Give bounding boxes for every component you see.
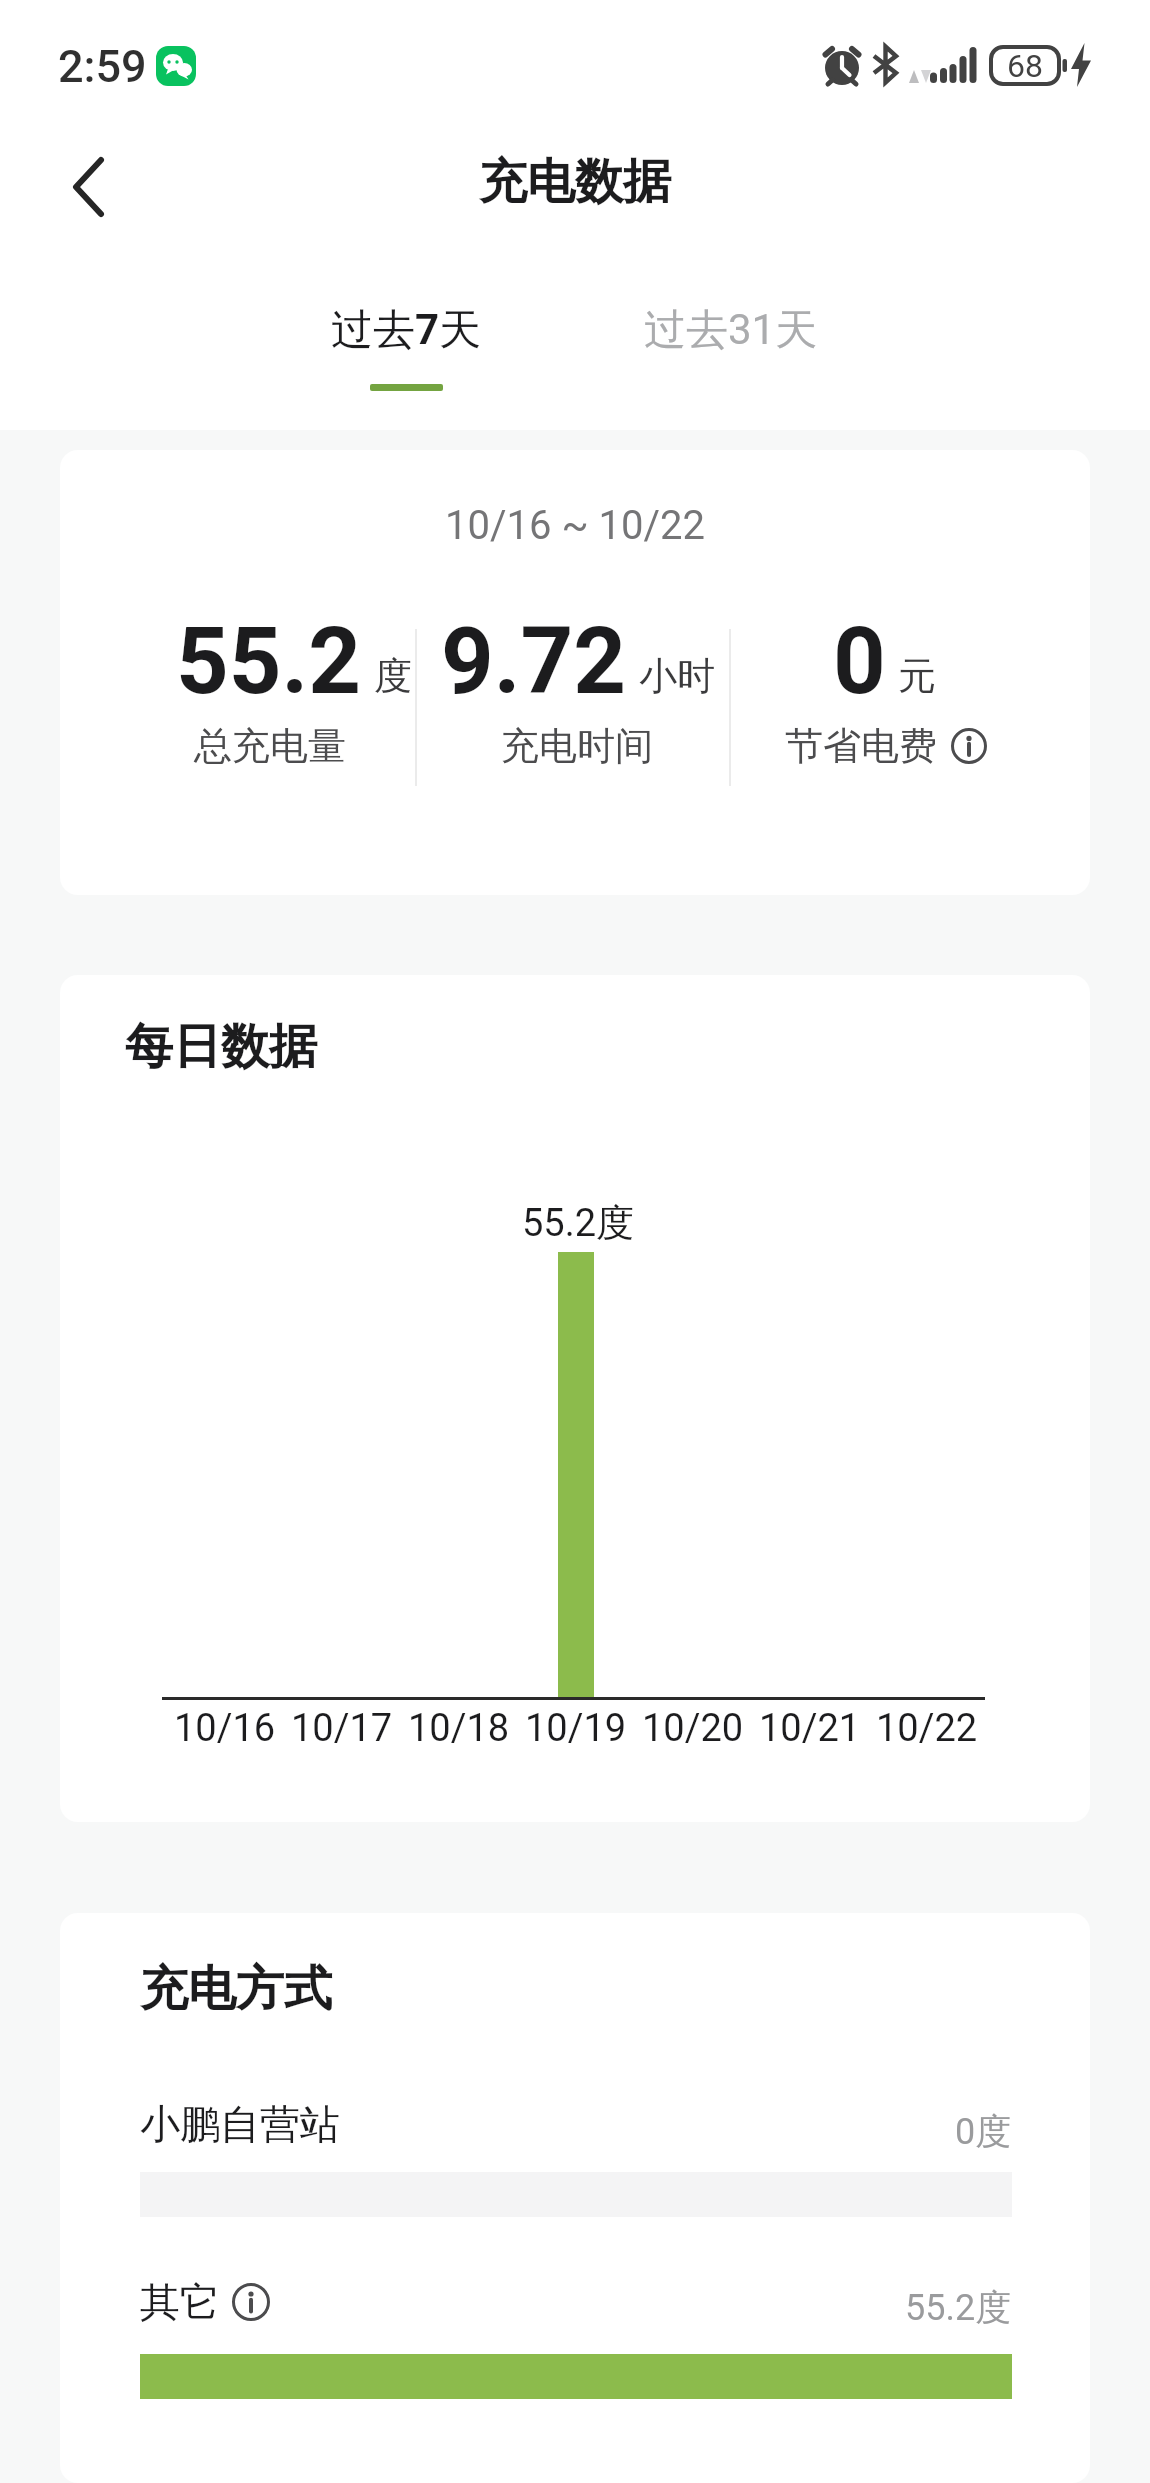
staticText: 其它 <box>140 2277 220 2327</box>
button[interactable]: 过去7天 <box>286 304 526 414</box>
staticText: 10/21 <box>759 1706 861 1751</box>
staticText: 总充电量 <box>194 722 346 770</box>
staticText: 过去31天 <box>644 304 818 357</box>
staticText: 68 <box>991 47 1059 85</box>
staticText: 过去7天 <box>331 304 482 357</box>
staticText: 充电时间 <box>501 722 653 770</box>
button[interactable] <box>232 2283 270 2321</box>
button[interactable] <box>951 728 987 764</box>
staticText: 55.2 <box>176 608 362 716</box>
staticText: 10/20 <box>642 1706 744 1751</box>
staticText: 充电数据 <box>0 152 1150 212</box>
staticText: 2:59 <box>58 40 147 93</box>
staticText: 充电方式 <box>140 1959 332 2019</box>
staticText: 55.2度 <box>905 2285 1012 2330</box>
button[interactable] <box>49 145 129 229</box>
staticText: 每日数据 <box>125 1017 317 1077</box>
staticText: 0 <box>833 608 886 716</box>
staticText: 10/18 <box>408 1706 510 1751</box>
staticText: 10/19 <box>525 1706 627 1751</box>
staticText: 55.2度 <box>522 1199 635 1247</box>
staticText: 0度 <box>955 2109 1012 2154</box>
staticText: 元 <box>898 652 936 700</box>
staticText: 10/16 ~ 10/22 <box>60 502 1090 549</box>
staticText: 度 <box>374 652 412 700</box>
staticText: 10/22 <box>876 1706 978 1751</box>
staticText: 小时 <box>639 652 715 700</box>
staticText: 小鹏自营站 <box>140 2099 340 2149</box>
staticText: 9.72 <box>441 608 627 716</box>
button[interactable]: 过去31天 <box>611 304 851 414</box>
staticText: 10/16 <box>174 1706 276 1751</box>
staticText: 节省电费 <box>785 722 937 770</box>
staticText: 10/17 <box>291 1706 393 1751</box>
